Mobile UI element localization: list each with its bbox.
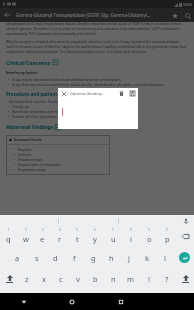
button[interactable]: Recent apps xyxy=(96,293,145,310)
button[interactable]: z xyxy=(18,268,35,289)
button[interactable]: 1 xyxy=(0,226,17,247)
button[interactable]: 6 xyxy=(86,226,104,247)
staticText: Hepatotoxic drugs xyxy=(18,168,46,172)
button[interactable]: Period xyxy=(164,289,178,310)
button[interactable]: n xyxy=(104,268,122,289)
staticText: Cirrhosis xyxy=(18,153,32,157)
staticText: g xyxy=(91,253,96,263)
button[interactable]: ?123 xyxy=(0,289,20,310)
staticText: 5 xyxy=(76,228,78,232)
staticText: 9 xyxy=(148,228,150,232)
button[interactable]: b xyxy=(86,268,104,289)
button[interactable]: g xyxy=(84,247,102,268)
button[interactable]: Voice input xyxy=(178,215,194,226)
staticText: • See inside front cover for xyxy=(6,100,48,104)
staticText: Blood tube commonly used: red xyxy=(12,110,60,114)
button[interactable]: Back xyxy=(0,8,14,22)
button[interactable]: Delete xyxy=(116,88,127,99)
button[interactable]: h xyxy=(102,247,120,268)
button[interactable]: Home xyxy=(48,293,96,310)
button[interactable]: f xyxy=(65,247,84,268)
staticText: 6 xyxy=(94,228,96,232)
button[interactable]: Comma xyxy=(20,289,36,310)
staticText: t xyxy=(76,234,79,244)
button[interactable]: m xyxy=(122,268,140,289)
button[interactable]: Close xyxy=(58,88,69,99)
button[interactable]: 2 xyxy=(17,226,34,247)
staticText: p xyxy=(165,234,170,244)
staticText: Drugs may be decreased levels include cl… xyxy=(12,78,122,82)
staticText: Gamma-Glutamyl Transpeptidase (GGTP, Gtp… xyxy=(16,12,166,18)
button[interactable]: s xyxy=(27,247,46,268)
staticText: • xyxy=(8,78,10,82)
staticText: n xyxy=(111,274,116,284)
button[interactable]: 9 xyxy=(140,226,158,247)
staticText: Drugs that may cause increased levels in… xyxy=(12,83,165,87)
staticText: 7 xyxy=(112,228,114,232)
button[interactable]: Shift xyxy=(176,268,194,289)
staticText: Clinical Concerns xyxy=(6,59,51,66)
staticText: ! xyxy=(148,274,151,284)
staticText: • xyxy=(14,158,16,162)
button[interactable]: a xyxy=(8,247,27,268)
staticText: 10:49 xyxy=(183,2,192,7)
staticText: u xyxy=(111,234,116,244)
staticText: Fasting: yes xyxy=(12,105,30,109)
staticText: • xyxy=(8,115,10,119)
staticText: • xyxy=(14,168,16,172)
button[interactable]: Back xyxy=(0,293,48,310)
button[interactable]: Search xyxy=(181,9,194,22)
staticText: l xyxy=(164,253,166,263)
button[interactable]: 4 xyxy=(51,226,68,247)
button[interactable]: c xyxy=(52,268,69,289)
staticText: 0 xyxy=(166,228,168,232)
button[interactable]: Space xyxy=(36,289,164,310)
staticText: 2 xyxy=(25,228,27,232)
button[interactable]: Save xyxy=(127,88,138,99)
button[interactable]: Shift xyxy=(0,268,18,289)
staticText: o xyxy=(147,234,152,244)
staticText: • xyxy=(8,105,10,109)
staticText: • xyxy=(8,83,10,87)
button[interactable]: ? xyxy=(158,268,176,289)
staticText: r xyxy=(58,234,62,244)
button[interactable]: 5 xyxy=(68,226,86,247)
staticText: Hepatitis xyxy=(18,148,32,152)
button[interactable]: x xyxy=(35,268,52,289)
staticText: 8 xyxy=(130,228,132,232)
button[interactable]: Bookmark xyxy=(168,9,181,22)
button[interactable]: 0 xyxy=(158,226,176,247)
button[interactable]: v xyxy=(69,268,86,289)
button[interactable]: 8 xyxy=(122,226,140,247)
button[interactable]: Backspace xyxy=(176,226,194,247)
button[interactable]: d xyxy=(46,247,65,268)
staticText: ? xyxy=(165,274,169,284)
staticText: k xyxy=(145,253,150,263)
staticText: • xyxy=(14,148,16,152)
staticText: Patients with liver dysfunction often ha… xyxy=(12,115,113,119)
staticText: w xyxy=(23,234,29,244)
staticText: h xyxy=(109,253,114,263)
staticText: phosphatase levels imply hepatobiliary d… xyxy=(6,22,188,36)
staticText: z xyxy=(25,274,29,284)
button[interactable]: j xyxy=(120,247,138,268)
staticText: Abnormal Findings xyxy=(6,124,53,131)
button[interactable]: k xyxy=(138,247,156,268)
button[interactable]: Enter xyxy=(174,247,194,268)
button[interactable]: ! xyxy=(140,268,158,289)
staticText: e xyxy=(40,234,45,244)
button[interactable]: Emoji xyxy=(178,289,194,310)
staticText: Why this enzyme is elevated after an acu… xyxy=(6,40,188,54)
staticText: • xyxy=(14,163,16,167)
staticText: y xyxy=(93,234,97,244)
staticText: • xyxy=(14,153,16,157)
button[interactable]: 3 xyxy=(34,226,51,247)
staticText: j xyxy=(128,253,130,263)
button[interactable]: l xyxy=(156,247,174,268)
button[interactable]: 7 xyxy=(104,226,122,247)
